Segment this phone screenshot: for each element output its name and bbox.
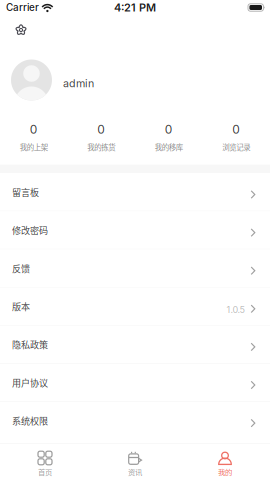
staticText: 留言板: [12, 185, 39, 198]
button[interactable]: 隐私政策: [0, 326, 270, 363]
staticText: 我的上架: [20, 142, 48, 152]
staticText: 修改密码: [12, 223, 48, 237]
staticText: 1.0.5: [226, 304, 245, 315]
staticText: 隐私政策: [12, 338, 48, 351]
button[interactable]: 用户协议: [0, 364, 270, 401]
staticText: 我的移库: [155, 142, 183, 152]
staticText: 资讯: [128, 466, 142, 477]
staticText: 0: [97, 122, 105, 137]
button[interactable]: Settings: [6, 20, 36, 40]
staticText: 系统权限: [12, 414, 48, 427]
staticText: 我的: [218, 466, 232, 477]
button[interactable]: 资讯: [90, 444, 180, 480]
button[interactable]: 修改密码: [0, 211, 270, 249]
button[interactable]: 版本: [0, 287, 270, 325]
button[interactable]: 系统权限: [0, 402, 270, 439]
button[interactable]: 留言板: [0, 173, 270, 211]
staticText: Carrier: [6, 1, 39, 13]
staticText: 反馈: [12, 262, 30, 275]
staticText: 4:21 PM: [114, 1, 156, 14]
staticText: 用户协议: [12, 376, 48, 389]
button[interactable]: 反馈: [0, 249, 270, 287]
staticText: 首页: [38, 466, 52, 477]
staticText: 我的拣货: [87, 142, 115, 152]
button[interactable]: 我的: [180, 444, 270, 480]
button[interactable]: 0: [67, 120, 135, 165]
staticText: 0: [165, 122, 173, 137]
button[interactable]: 0: [0, 120, 67, 165]
button[interactable]: 0: [135, 120, 202, 165]
staticText: 0: [232, 122, 240, 137]
staticText: 0: [30, 122, 38, 137]
button[interactable]: 0: [202, 120, 270, 165]
button[interactable]: 首页: [0, 444, 90, 480]
staticText: 浏览记录: [222, 142, 250, 152]
staticText: admin: [63, 77, 94, 90]
staticText: 版本: [12, 300, 30, 313]
